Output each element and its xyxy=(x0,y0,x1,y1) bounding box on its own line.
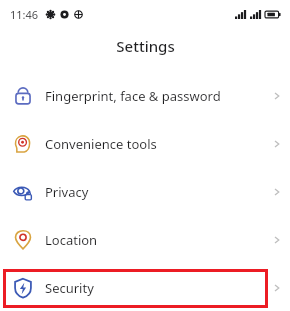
staticText: Fingerprint, face & password xyxy=(45,87,221,105)
staticText: Privacy xyxy=(45,183,89,201)
staticText: 11:46 xyxy=(10,7,39,22)
staticText: Location xyxy=(45,231,98,249)
button[interactable]: Convenience tools xyxy=(0,120,290,168)
button[interactable]: Fingerprint, face & password xyxy=(0,72,290,120)
button[interactable]: Location xyxy=(0,216,290,264)
button[interactable]: Security xyxy=(0,264,290,311)
staticText: Convenience tools xyxy=(45,135,157,153)
button[interactable]: Privacy xyxy=(0,168,290,216)
staticText: Settings xyxy=(116,36,175,56)
staticText: Security xyxy=(45,279,94,297)
